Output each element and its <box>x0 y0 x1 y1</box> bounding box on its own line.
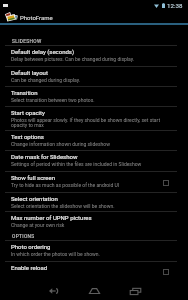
button[interactable]: Back <box>44 282 62 300</box>
staticText: Select orientation the slideshow will be… <box>11 203 177 209</box>
staticText: In which order the photos will be shown. <box>11 251 177 257</box>
button[interactable]: Home <box>85 282 103 300</box>
staticText: Start opacity <box>11 109 177 116</box>
staticText: Max number of UPNP pictures <box>11 214 177 221</box>
button[interactable]: Enable reload <box>0 262 188 282</box>
button[interactable]: Date mask for Slideshow <box>0 151 188 172</box>
staticText: Change at your own risk <box>11 222 177 228</box>
staticText: Settings of period within the files are … <box>11 161 177 167</box>
staticText: Try to hide as much as possible of the a… <box>11 182 164 188</box>
button[interactable]: Recents <box>126 282 144 300</box>
staticText: 12:38 <box>167 2 183 9</box>
staticText: SLIDESHOW <box>12 39 42 45</box>
button[interactable]: Photo ordering <box>0 241 188 262</box>
button[interactable]: Max number of UPNP pictures <box>0 212 188 232</box>
staticText: PhotoFrame <box>20 14 53 21</box>
button[interactable]: Default layout <box>0 67 188 87</box>
staticText: Photos will appear slowly. If they shoul… <box>11 117 177 128</box>
staticText: Change information shown during slidesho… <box>11 141 177 147</box>
staticText: Select transition between two photos. <box>11 97 177 103</box>
button[interactable]: Default delay (seconds) <box>0 46 188 67</box>
button[interactable]: Text options <box>0 131 188 151</box>
button[interactable]: Transition <box>0 87 188 107</box>
staticText: OPTIONS <box>12 234 35 240</box>
staticText: Show full screen <box>11 174 164 181</box>
staticText: Text options <box>11 133 177 140</box>
staticText: Can be changed during display. <box>11 77 177 83</box>
staticText: Default delay (seconds) <box>11 48 177 55</box>
button[interactable]: Start opacity <box>0 107 188 131</box>
staticText: Default layout <box>11 69 177 76</box>
staticText: Select orientation <box>11 195 177 202</box>
button[interactable]: Select orientation <box>0 193 188 212</box>
button[interactable]: Show full screen <box>0 172 188 193</box>
staticText: Transition <box>11 89 177 96</box>
staticText: Date mask for Slideshow <box>11 153 177 160</box>
staticText: Photo ordering <box>11 243 177 250</box>
staticText: Delay between pictures. Can be changed d… <box>11 56 177 62</box>
staticText: Enable reload <box>11 264 164 271</box>
